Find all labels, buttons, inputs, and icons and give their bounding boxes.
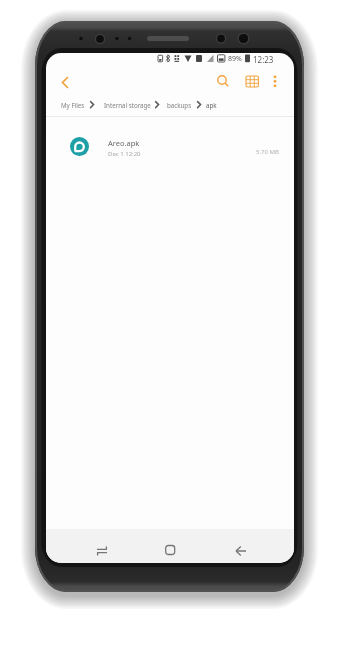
staticText: apk (206, 101, 217, 109)
button[interactable]: Internal storage (104, 101, 151, 109)
button[interactable]: apk (206, 101, 217, 109)
staticText: 5.70 MB (256, 148, 279, 156)
button[interactable]: Areo.apk (46, 129, 294, 167)
staticText: My Files (61, 101, 85, 109)
staticText: Internal storage (104, 101, 151, 109)
button[interactable] (267, 71, 283, 91)
staticText: Areo.apk (108, 138, 140, 148)
button[interactable]: My Files (61, 101, 85, 109)
staticText: 89% (228, 54, 242, 64)
button[interactable] (230, 540, 252, 562)
staticText: Dec 1 12:20 (108, 150, 141, 158)
button[interactable] (242, 71, 262, 91)
button[interactable] (55, 72, 75, 92)
button[interactable] (213, 71, 233, 91)
button[interactable]: backups (167, 101, 192, 109)
button[interactable] (159, 539, 181, 561)
button[interactable] (91, 540, 113, 562)
staticText: backups (167, 101, 192, 109)
staticText: 12:23 (253, 54, 274, 65)
